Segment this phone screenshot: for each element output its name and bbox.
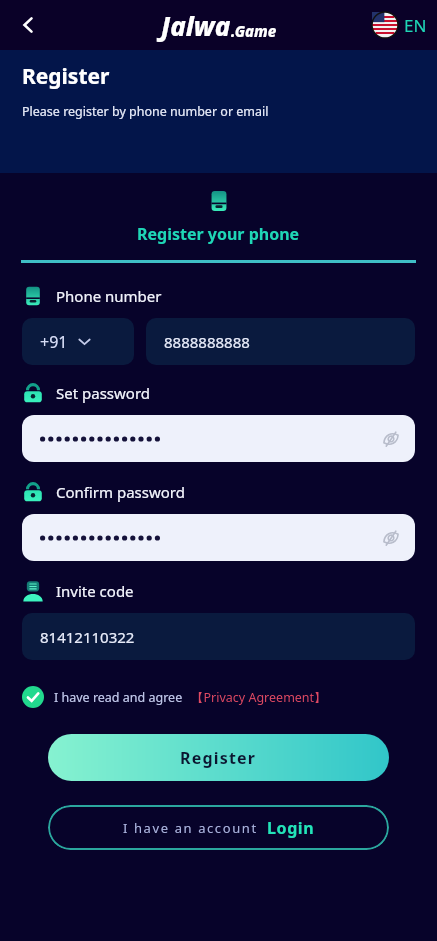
staticText: 【Privacy Agreement】 [191,689,327,706]
staticText: Register [22,62,110,91]
staticText: Set password [56,383,151,403]
button[interactable]: Back [8,5,48,45]
staticText: I have an account [123,819,258,837]
staticText: +91 [40,331,68,353]
button[interactable]: 8888888888 [146,318,415,365]
staticText: 8888888888 [164,332,250,352]
button[interactable]: Register [48,734,389,781]
button[interactable]: Toggle password visibility [22,514,415,561]
button[interactable]: I have read and agree [22,686,327,708]
button[interactable]: Toggle password visibility [22,415,415,462]
staticText: Please register by phone number or email [22,103,269,120]
staticText: Phone number [56,286,162,306]
staticText: Jalwa [161,8,231,43]
button[interactable]: 81412110322 [22,613,415,660]
other: Toggle password visibility [381,528,401,548]
button[interactable]: +91 [22,318,134,365]
staticText: .Game [231,21,277,41]
staticText: 81412110322 [40,627,135,647]
staticText: Register [180,747,257,769]
staticText: I have read and agree [54,689,183,706]
button[interactable]: Language [372,12,427,38]
staticText: Confirm password [56,482,185,502]
staticText: Invite code [56,581,134,601]
other: Toggle password visibility [381,429,401,449]
other: Language [372,12,398,38]
button[interactable]: Register your phone [137,189,300,245]
button[interactable]: I have an account [48,805,389,850]
staticText: Register your phone [137,223,300,245]
staticText: EN [404,14,427,37]
staticText: Login [267,817,315,839]
